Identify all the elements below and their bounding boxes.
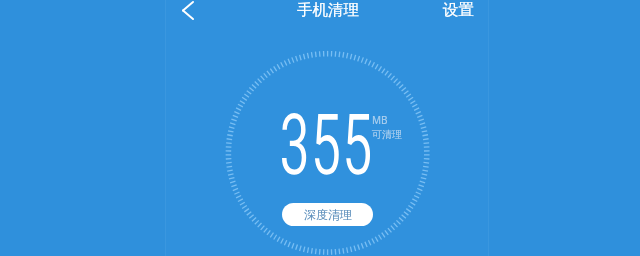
staticText: 深度清理 (304, 207, 352, 222)
staticText: 可清理 (372, 128, 402, 141)
staticText: 手机清理 (297, 0, 359, 20)
button[interactable]: Back (174, 0, 201, 21)
button[interactable]: 深度清理 (282, 203, 373, 226)
button[interactable]: 设置 (438, 0, 478, 20)
staticText: MB (372, 113, 388, 127)
staticText: 设置 (443, 0, 474, 20)
